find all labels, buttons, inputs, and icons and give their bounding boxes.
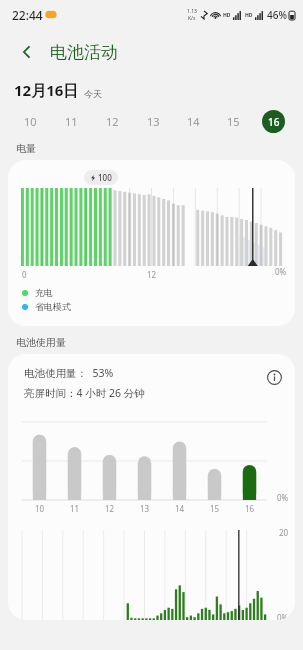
staticText: 12 <box>105 503 115 514</box>
staticText: 10 <box>24 114 37 129</box>
staticText: 电池活动 <box>50 42 118 63</box>
staticText: 14 <box>187 114 200 129</box>
staticText: 15 <box>210 503 220 514</box>
staticText: 14 <box>175 503 185 514</box>
button[interactable]: 返回 <box>12 37 42 67</box>
staticText: 20 <box>279 527 289 538</box>
staticText: 46% <box>267 8 287 22</box>
staticText: 11 <box>70 503 80 514</box>
staticText: 电池使用量： 53% <box>24 366 114 380</box>
staticText: 12月16日 <box>14 80 79 100</box>
button[interactable]: 11 <box>51 108 92 134</box>
button[interactable]: 13 <box>133 108 173 134</box>
staticText: 16 <box>245 503 255 514</box>
staticText: 电池使用量 <box>16 336 66 349</box>
staticText: 22:44 <box>12 7 43 23</box>
staticText: 0% <box>275 266 287 277</box>
button[interactable]: 14 <box>173 108 213 134</box>
staticText: 今天 <box>84 88 102 99</box>
staticText: 电量 <box>16 142 36 155</box>
staticText: 16 <box>268 115 280 129</box>
staticText: 13 <box>147 114 160 129</box>
button[interactable]: 100 <box>8 160 295 326</box>
staticText: 12 <box>106 114 119 129</box>
staticText: 10 <box>35 503 45 514</box>
staticText: 省电模式 <box>35 301 71 312</box>
staticText: 11 <box>65 114 78 129</box>
staticText: 0 <box>22 269 27 280</box>
staticText: 充电 <box>35 287 53 298</box>
button[interactable]: 16 <box>253 108 293 134</box>
staticText: 13 <box>140 503 150 514</box>
staticText: HD <box>223 12 231 19</box>
staticText: 0% <box>277 492 289 503</box>
button[interactable]: 12 <box>92 108 133 134</box>
staticText: HD <box>245 12 253 19</box>
staticText: 1.13 <box>187 8 197 15</box>
staticText: 12 <box>147 269 157 280</box>
button[interactable]: 信息 <box>263 366 285 388</box>
staticText: K/s <box>188 15 196 22</box>
staticText: 亮屏时间：4 小时 26 分钟 <box>24 386 145 400</box>
staticText: 0% <box>277 612 289 620</box>
staticText: 100 <box>98 172 112 183</box>
button[interactable]: 10 <box>10 108 51 134</box>
button[interactable]: 15 <box>213 108 253 134</box>
staticText: 15 <box>227 114 240 129</box>
